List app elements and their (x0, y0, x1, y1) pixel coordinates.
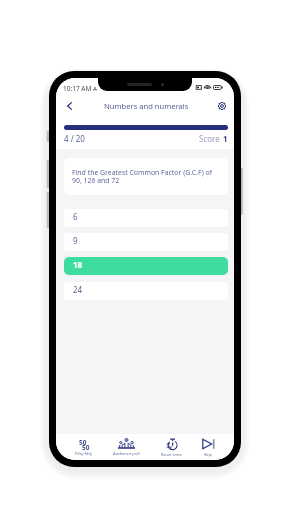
staticText: 9 (73, 235, 78, 246)
button[interactable]: 50 (73, 438, 95, 457)
staticText: 1 (223, 133, 228, 144)
staticText: 50 (82, 443, 90, 452)
staticText: Reset time (161, 452, 182, 458)
staticText: 24 (73, 284, 83, 295)
staticText: Find the Greatest Common Factor (G.C.F) … (72, 168, 220, 185)
staticText: Skip (204, 452, 213, 458)
staticText: 6 (73, 211, 78, 222)
button[interactable]: Settings (215, 99, 229, 113)
staticText: Fifty fifty (75, 451, 93, 457)
staticText: 50 (79, 438, 87, 447)
button[interactable]: Audience poll (111, 438, 142, 457)
button[interactable]: 9 (64, 233, 228, 251)
button[interactable]: 6 (64, 209, 228, 227)
staticText: Numbers and numerals (104, 101, 189, 111)
staticText: Score (199, 133, 220, 144)
button[interactable]: Back (63, 100, 77, 114)
button[interactable]: Skip (200, 438, 217, 458)
staticText: 18 (73, 259, 83, 270)
button[interactable]: 18 (64, 257, 228, 275)
staticText: 4 / 20 (64, 133, 85, 144)
staticText: Audience poll (113, 451, 140, 457)
staticText: 10:17 AM (63, 84, 92, 93)
button[interactable]: 24 (64, 282, 228, 300)
button[interactable]: Reset time (159, 438, 184, 458)
